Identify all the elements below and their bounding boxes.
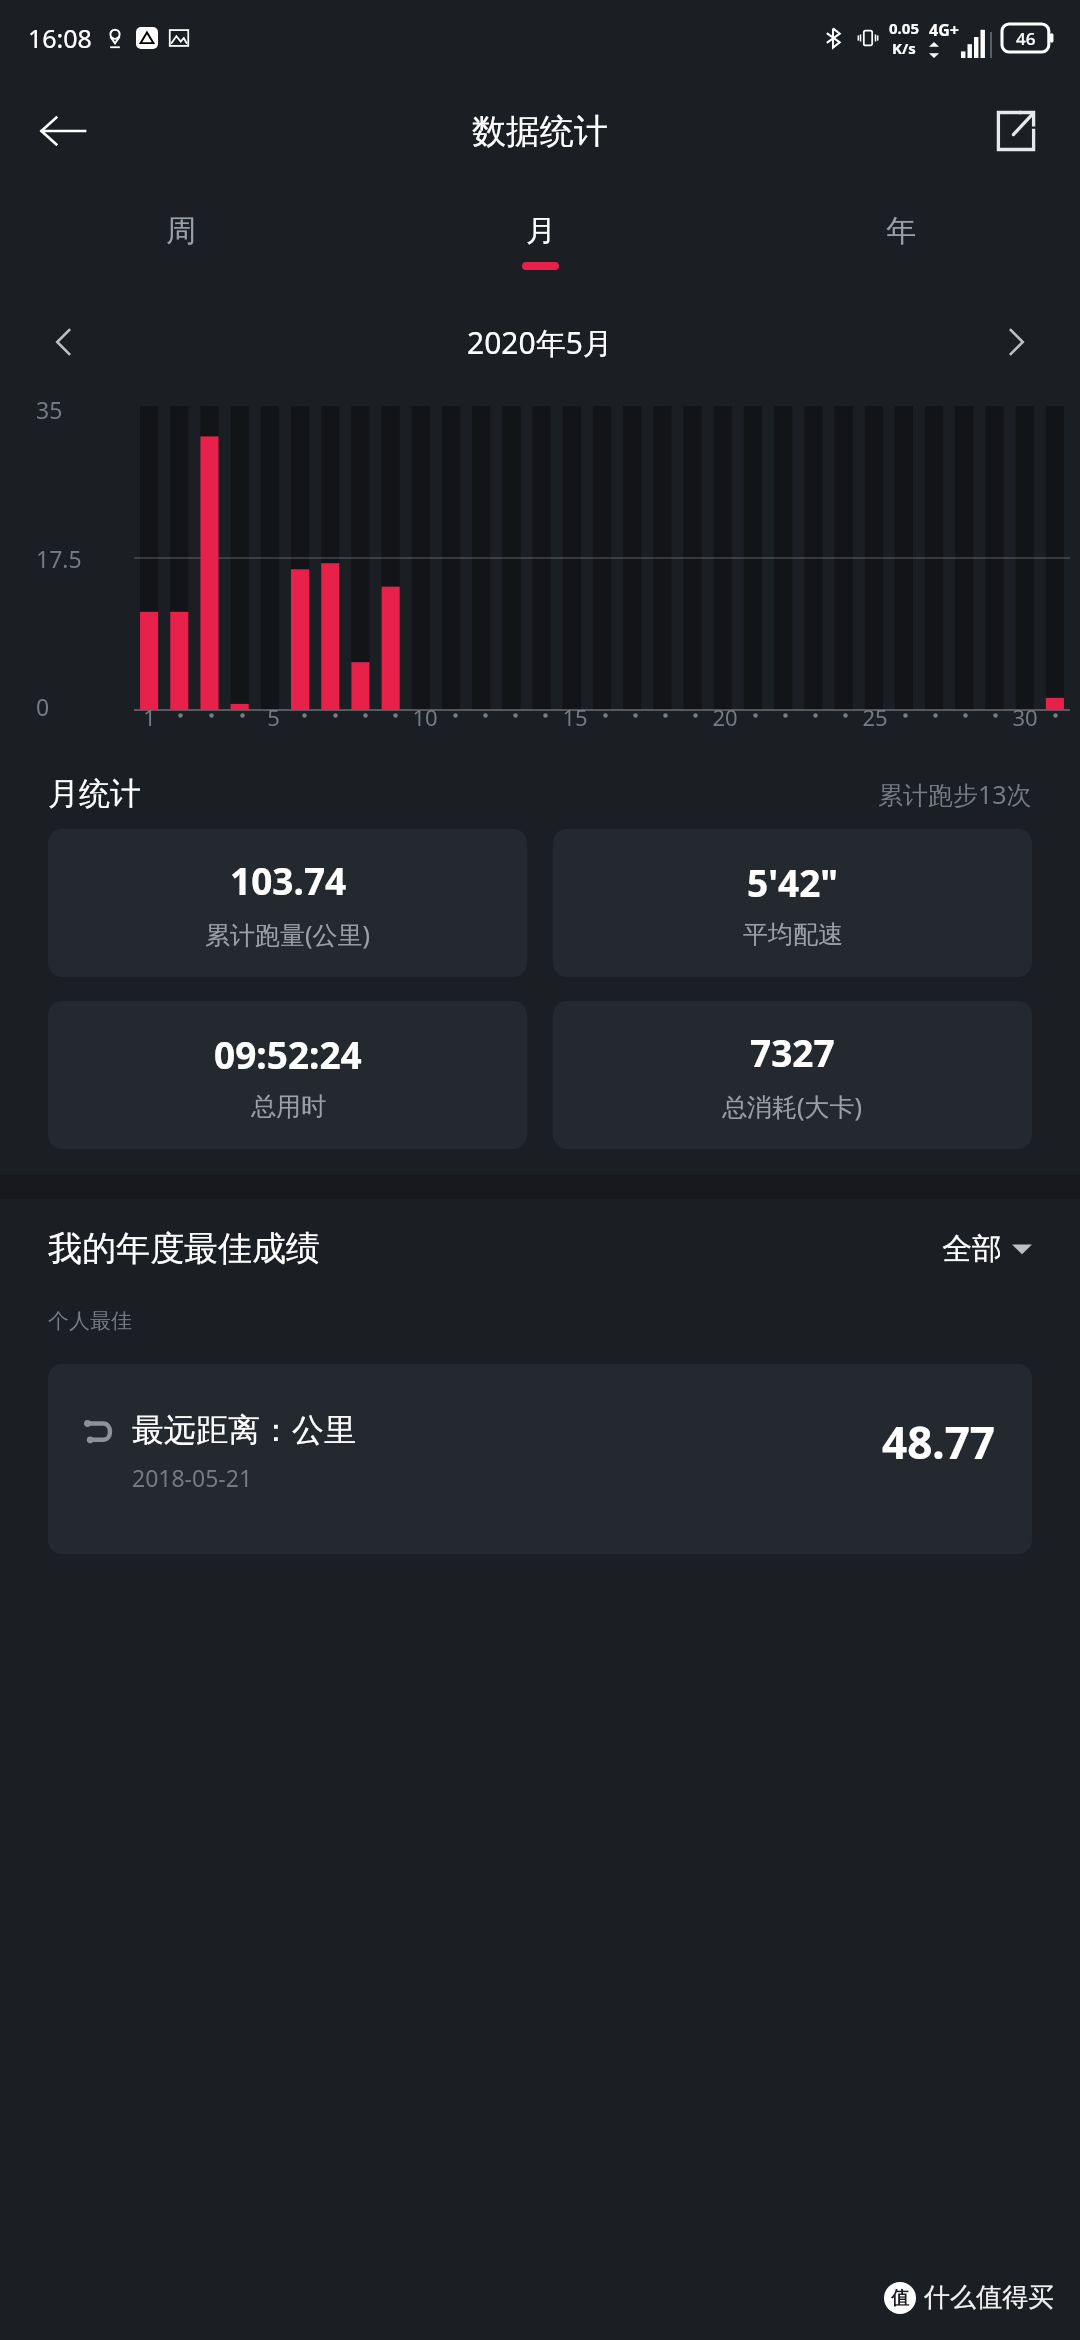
staticText: 35 bbox=[36, 394, 63, 425]
staticText: 2018-05-21 bbox=[132, 1462, 253, 1493]
staticText: 月统计 bbox=[48, 774, 141, 813]
button[interactable]: 周 bbox=[0, 186, 360, 296]
button[interactable]: Next month bbox=[986, 312, 1046, 372]
staticText: 月 bbox=[526, 212, 556, 250]
staticText: 2020年5月 bbox=[467, 322, 613, 363]
staticText: 10 bbox=[412, 702, 438, 728]
staticText: 17.5 bbox=[36, 543, 82, 574]
staticText: 48.77 bbox=[882, 1412, 996, 1472]
staticText: 我的年度最佳成绩 bbox=[48, 1227, 320, 1270]
staticText: 什么值得买 bbox=[924, 2281, 1054, 2314]
button[interactable]: 09:52:24 bbox=[48, 1001, 527, 1149]
staticText: 累计跑步13次 bbox=[878, 777, 1032, 811]
staticText: 5 bbox=[267, 702, 280, 728]
staticText: 09:52:24 bbox=[214, 1029, 362, 1079]
button[interactable]: Previous month bbox=[34, 312, 94, 372]
staticText: 0 bbox=[36, 691, 50, 722]
staticText: 1 bbox=[143, 702, 156, 728]
staticText: 周 bbox=[166, 212, 196, 250]
staticText: 数据统计 bbox=[472, 110, 608, 153]
button[interactable]: 全部 bbox=[942, 1230, 1032, 1268]
button[interactable]: 月 bbox=[360, 186, 720, 296]
button[interactable]: 7327 bbox=[553, 1001, 1032, 1149]
button[interactable]: Share bbox=[982, 97, 1050, 165]
staticText: 平均配速 bbox=[743, 919, 843, 950]
staticText: 25 bbox=[862, 702, 888, 728]
staticText: 总消耗(大卡) bbox=[722, 1089, 863, 1123]
staticText: 最远距离：公里 bbox=[132, 1410, 356, 1450]
staticText: 7327 bbox=[750, 1027, 835, 1077]
staticText: 4G+ bbox=[929, 19, 959, 41]
staticText: 5'42" bbox=[747, 857, 839, 907]
staticText: 个人最佳 bbox=[48, 1308, 132, 1334]
staticText: 46 bbox=[1016, 27, 1036, 50]
button[interactable]: 最远距离：公里 bbox=[48, 1364, 1032, 1554]
staticText: 总用时 bbox=[251, 1091, 326, 1122]
staticText: 16:08 bbox=[28, 21, 92, 55]
button[interactable]: 年 bbox=[720, 186, 1080, 296]
button[interactable]: 103.74 bbox=[48, 829, 527, 977]
staticText: 值 bbox=[891, 2287, 909, 2310]
button[interactable]: 5'42" bbox=[553, 829, 1032, 977]
staticText: 15 bbox=[562, 702, 588, 728]
staticText: 累计跑量(公里) bbox=[205, 917, 371, 951]
staticText: K/s bbox=[892, 38, 916, 58]
staticText: 全部 bbox=[942, 1230, 1002, 1268]
staticText: 20 bbox=[712, 702, 738, 728]
staticText: 103.74 bbox=[230, 855, 347, 905]
staticText: 年 bbox=[886, 212, 916, 250]
staticText: 30 bbox=[1012, 702, 1038, 728]
button[interactable]: Back bbox=[26, 94, 100, 168]
staticText: 0.05 bbox=[889, 18, 919, 38]
